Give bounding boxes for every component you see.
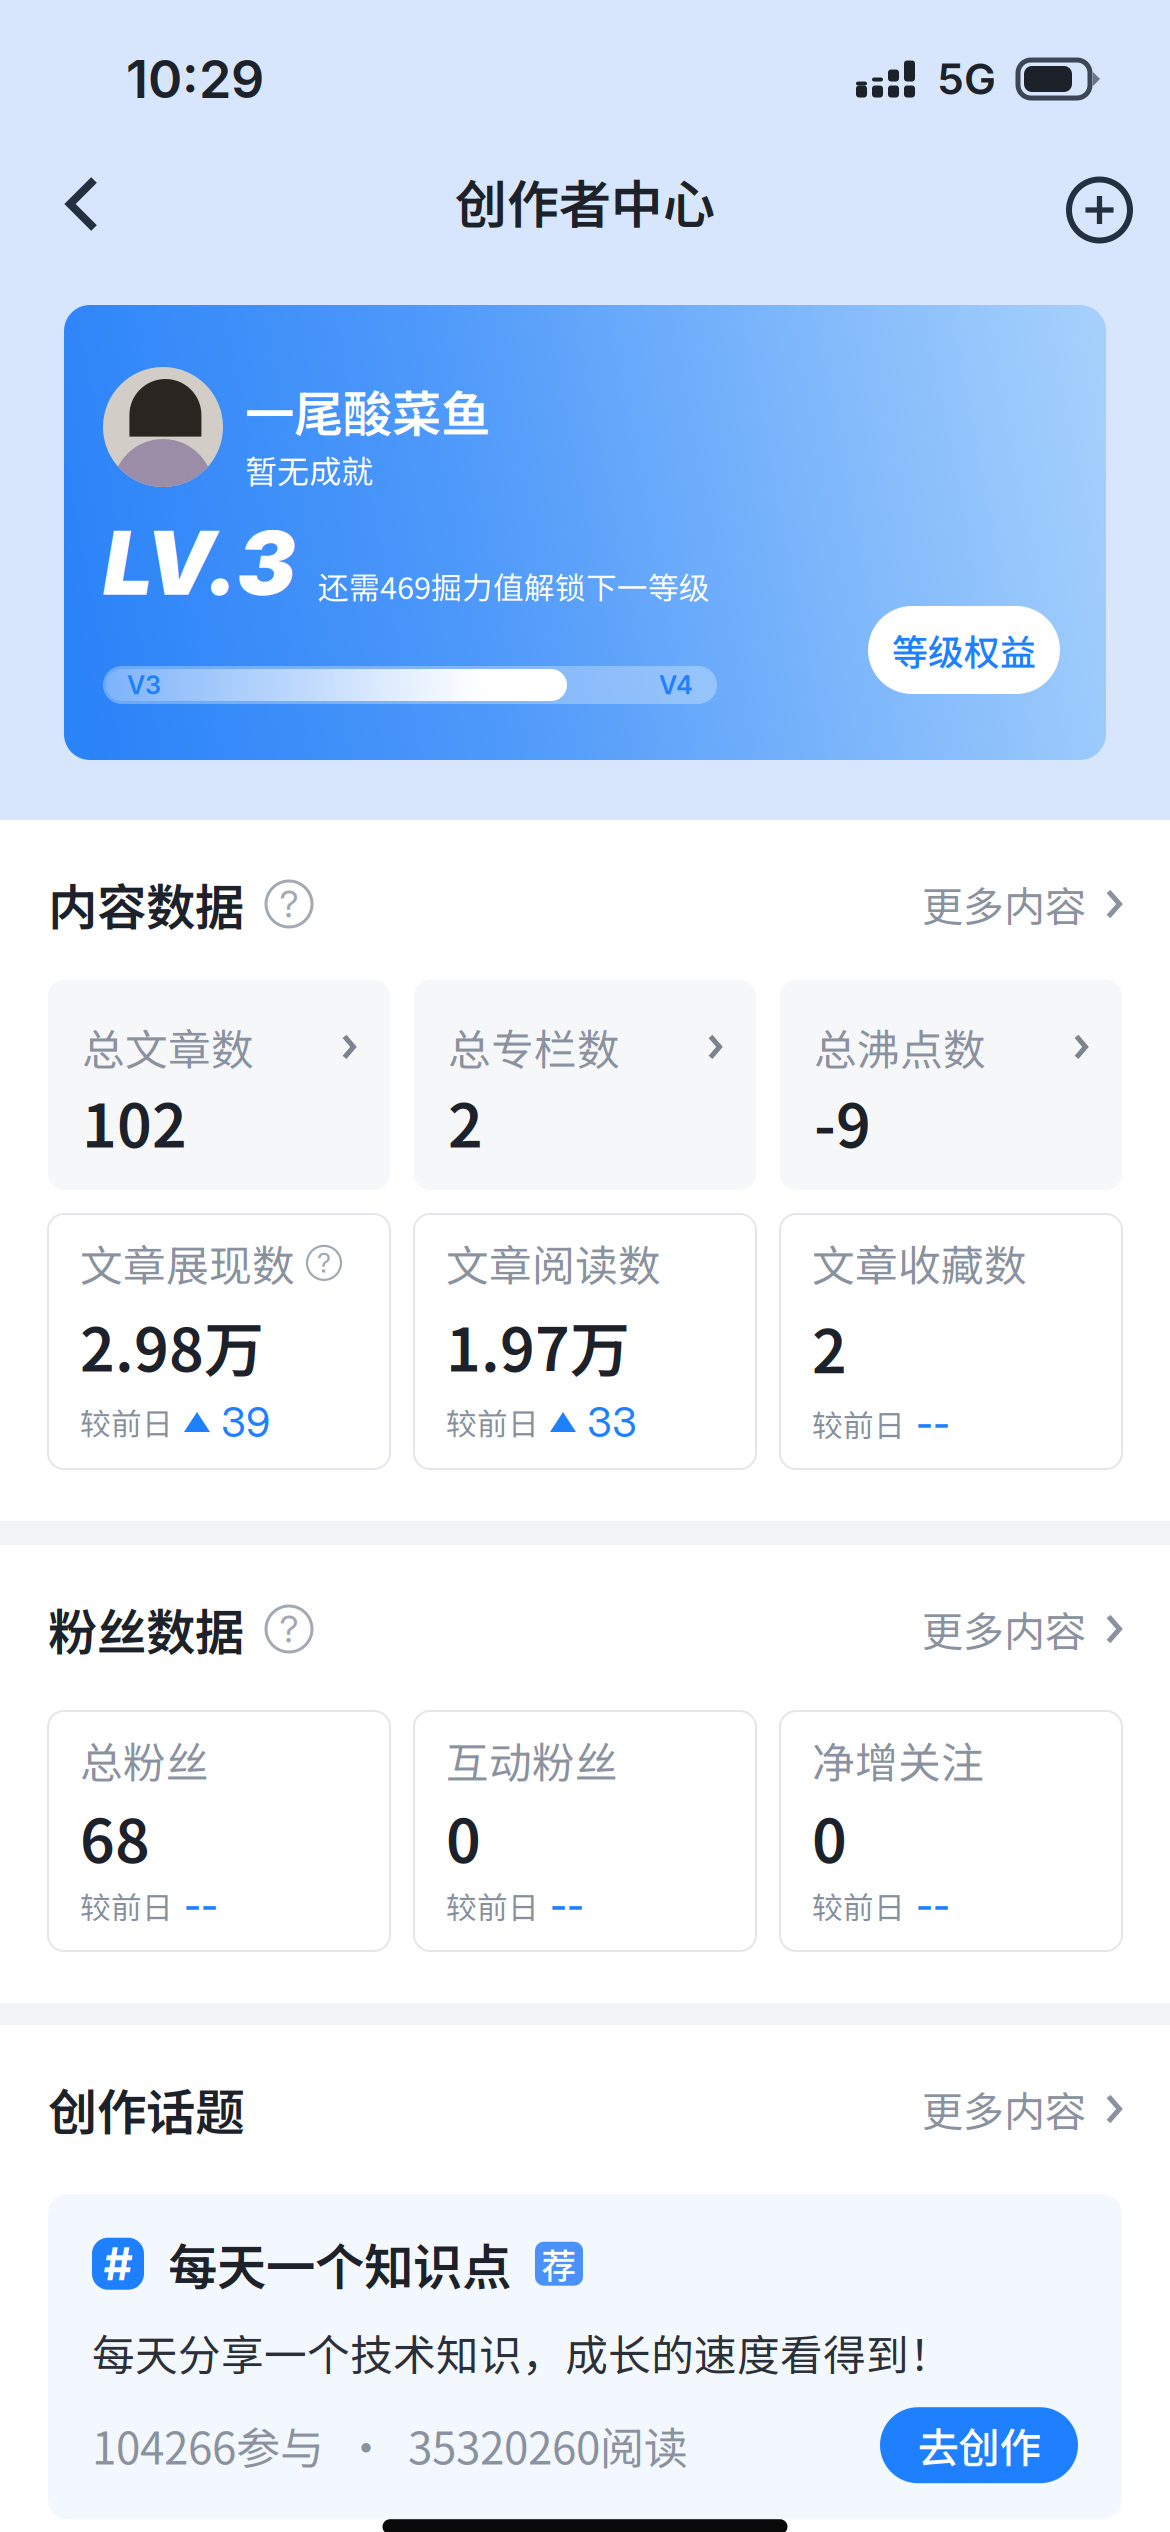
staticText: 总粉丝 [80, 1729, 209, 1791]
staticText: 总沸点数 [814, 1016, 986, 1078]
staticText: 较前日 [446, 1883, 539, 1928]
button[interactable]: 总文章数 [48, 980, 390, 1190]
staticText: 较前日 [812, 1883, 905, 1928]
button[interactable]: 净增关注 [780, 1711, 1122, 1951]
button[interactable]: 总沸点数 [780, 980, 1122, 1190]
staticText: 总文章数 [82, 1016, 254, 1078]
staticText: 文章展现数 [80, 1232, 295, 1294]
button[interactable]: 等级权益 [868, 606, 1060, 694]
staticText: 10:29 [126, 47, 264, 110]
button[interactable]: 文章阅读数 [414, 1214, 756, 1469]
staticText: 互动粉丝 [446, 1729, 618, 1791]
staticText: 2 [812, 1304, 847, 1390]
staticText: -- [916, 1400, 950, 1447]
button[interactable]: 新建 [1051, 151, 1148, 264]
button[interactable]: # [48, 2194, 1122, 2519]
button[interactable]: 更多内容 [922, 2079, 1122, 2139]
staticText: 粉丝数据 [48, 1593, 244, 1665]
staticText: -- [916, 1882, 950, 1929]
staticText: 2.98万 [80, 1302, 264, 1389]
staticText: LV.3 [103, 509, 296, 616]
button[interactable]: 返回 [35, 154, 129, 262]
staticText: 2 [448, 1078, 483, 1165]
staticText: 较前日 [446, 1400, 539, 1444]
button[interactable]: 互动粉丝 [414, 1711, 756, 1951]
staticText: 较前日 [80, 1883, 173, 1928]
button[interactable]: 总粉丝 [48, 1711, 390, 1951]
staticText: 还需469掘力值解锁下一等级 [318, 564, 710, 608]
staticText: 0 [446, 1793, 481, 1880]
staticText: 净增关注 [812, 1729, 984, 1791]
staticText: 更多内容 [922, 2079, 1086, 2139]
staticText: 5G [937, 53, 996, 105]
staticText: 39 [221, 1397, 270, 1447]
staticText: 104266参与 · 35320260阅读 [92, 2413, 688, 2477]
staticText: 总专栏数 [448, 1016, 620, 1078]
staticText: V3 [127, 670, 161, 700]
staticText: -- [184, 1882, 218, 1929]
staticText: 一尾酸菜鱼 [245, 375, 490, 446]
staticText: 荐 [541, 2239, 576, 2289]
button[interactable]: 更多内容 [922, 1599, 1122, 1659]
staticText: V4 [659, 670, 693, 700]
staticText: 文章阅读数 [446, 1232, 661, 1294]
staticText: ? [279, 882, 298, 926]
staticText: 每天一个知识点 [168, 2228, 511, 2299]
button[interactable]: 文章收藏数 [780, 1214, 1122, 1469]
staticText: 暂无成就 [245, 446, 373, 493]
staticText: 较前日 [812, 1401, 905, 1446]
staticText: 文章收藏数 [812, 1232, 1027, 1294]
staticText: ? [317, 1246, 331, 1279]
button[interactable]: 文章展现数 [48, 1214, 390, 1469]
staticText: 每天分享一个技术知识，成长的速度看得到！ [92, 2321, 952, 2383]
staticText: 等级权益 [892, 624, 1036, 676]
staticText: -9 [814, 1078, 871, 1165]
staticText: 创作者中心 [455, 163, 715, 239]
staticText: 更多内容 [922, 874, 1086, 934]
staticText: ? [279, 1607, 298, 1651]
staticText: 创作话题 [48, 2073, 244, 2145]
staticText: 内容数据 [48, 868, 244, 940]
button[interactable]: 更多内容 [922, 874, 1122, 934]
staticText: # [103, 2236, 132, 2291]
staticText: -- [550, 1882, 584, 1929]
button[interactable]: 总专栏数 [414, 980, 756, 1190]
staticText: 0 [812, 1793, 847, 1880]
staticText: 较前日 [80, 1400, 173, 1444]
staticText: 102 [82, 1078, 187, 1165]
staticText: 更多内容 [922, 1599, 1086, 1659]
staticText: 33 [587, 1397, 637, 1447]
staticText: 68 [80, 1793, 150, 1880]
staticText: 去创作 [917, 2415, 1040, 2475]
staticText: 1.97万 [446, 1302, 630, 1389]
